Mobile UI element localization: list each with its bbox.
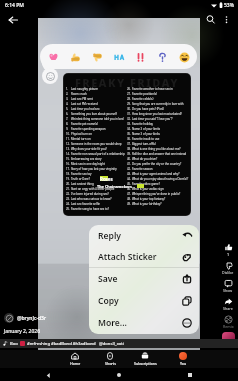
button[interactable]: thumbs down	[88, 46, 106, 68]
staticText: #refreshing #badBond #h3adbond @donc3_xo…	[27, 341, 124, 347]
staticText: 15.	[66, 157, 71, 161]
button[interactable]: Attach Sticker	[89, 246, 199, 267]
staticText: Why does your side fit you?	[71, 147, 107, 151]
staticText: 49.	[127, 202, 132, 206]
button[interactable]: Shorts	[95, 350, 125, 368]
staticText: 10.	[66, 132, 71, 136]
staticText: 9.	[66, 127, 71, 131]
staticText: Last time you said "I love you"?	[132, 117, 173, 121]
staticText: 38.	[127, 147, 132, 151]
staticText: Favorite spanking weapon	[71, 127, 106, 131]
staticText: Show	[223, 288, 233, 293]
staticText: FREAKY FRIDAY	[63, 75, 191, 90]
staticText: 24.	[66, 202, 71, 206]
staticText: You	[180, 361, 187, 366]
button[interactable]: question	[153, 46, 171, 68]
staticText: 17.	[66, 167, 71, 171]
button[interactable]: Add reaction	[42, 68, 58, 84]
staticText: Boo	[10, 341, 18, 347]
staticText: 45.	[127, 182, 132, 186]
staticText: Name 3 of your limits	[132, 127, 161, 131]
staticText: 6.	[66, 112, 71, 116]
button[interactable]: @brynJc-d3r	[4, 313, 47, 323]
staticText: 36.	[127, 137, 132, 141]
staticText: Start an orgy with 4 other people	[71, 187, 115, 191]
staticText: Truth or Dare?	[71, 177, 90, 181]
button[interactable]: Subscriptions	[130, 350, 160, 368]
button[interactable]: FREAKY FRIDAY	[63, 73, 191, 216]
staticText: 16.	[66, 162, 71, 166]
staticText: Favorite celeb(s)	[132, 97, 154, 101]
staticText: Biggest turn-off(s)	[132, 142, 156, 146]
staticText: 40.	[127, 157, 132, 161]
staticText: 34.	[127, 127, 132, 131]
staticText: Do you have pets? (Pics!)	[132, 107, 165, 111]
staticText: 25.	[66, 207, 71, 211]
staticText: Shorts	[105, 361, 116, 366]
button[interactable]: Save	[89, 268, 199, 290]
staticText: Weirdest thing someone told you in bed	[71, 117, 124, 121]
button[interactable]: More...	[89, 312, 199, 334]
staticText: The Chainsmokers	[97, 184, 132, 189]
staticText: Someone in the room you would sleep with…	[71, 142, 127, 146]
staticText: Subscriptions	[134, 361, 157, 366]
button[interactable]: More options	[218, 11, 235, 28]
button[interactable]: Sound track	[0, 339, 238, 348]
staticText: 1	[227, 252, 230, 257]
staticText: Home	[70, 361, 81, 366]
button[interactable]: Search	[202, 11, 219, 28]
button[interactable]: laughing	[175, 46, 193, 68]
button[interactable]: Recent apps	[184, 369, 196, 381]
staticText: Favorite season	[132, 167, 153, 171]
staticText: 5.	[66, 107, 71, 111]
button[interactable]: Dislike	[222, 261, 234, 275]
staticText: What do you enjoy about having a Dom(s)?	[132, 177, 189, 181]
button[interactable]: You	[168, 350, 198, 368]
button[interactable]: Back	[4, 11, 21, 28]
staticText: Favorite position(s)	[132, 92, 157, 96]
staticText: Remix	[223, 324, 234, 329]
staticText: January 2, 2026	[4, 328, 41, 335]
staticText: 14.	[66, 152, 71, 156]
staticText: Do you prefer the city or the country?	[132, 162, 182, 166]
staticText: What is your top fantasy?	[132, 197, 166, 201]
staticText: 26.	[127, 87, 132, 91]
staticText: Room crush	[71, 92, 87, 96]
staticText: What is your agent animal and why?	[132, 172, 180, 176]
button[interactable]: Like	[224, 243, 233, 257]
staticText: 18.	[66, 172, 71, 176]
staticText: 20.	[66, 182, 71, 186]
button[interactable]: Back	[42, 369, 54, 381]
staticText: 41.	[127, 162, 132, 166]
staticText: 31.	[127, 112, 132, 116]
staticText: 39.	[127, 152, 132, 156]
button[interactable]: Remix	[223, 315, 234, 329]
button[interactable]: Copy	[89, 290, 199, 312]
button[interactable]: thumbs up	[66, 46, 84, 68]
button[interactable]: Reply	[89, 225, 199, 246]
staticText: 13.	[66, 147, 71, 151]
staticText: Name 3 of your kinks	[132, 132, 160, 136]
button[interactable]: Share	[223, 297, 233, 311]
staticText: 44.	[127, 177, 132, 181]
button[interactable]: Comments	[223, 279, 233, 293]
staticText: Favorite insult to use	[132, 137, 160, 141]
staticText: 42.	[127, 167, 132, 171]
button[interactable]: Home	[113, 369, 125, 381]
staticText: Last time you had sex	[71, 107, 100, 111]
button[interactable]: Home	[60, 350, 90, 368]
staticText: Share	[223, 306, 233, 311]
staticText: 47.	[127, 192, 132, 196]
staticText: Favorite weather to have sex in	[132, 87, 173, 91]
button[interactable]: heart	[44, 46, 62, 68]
staticText: Favorite video game?	[132, 182, 160, 186]
button[interactable]: Sound	[222, 332, 235, 345]
staticText: 28.	[127, 97, 132, 101]
button[interactable]: exclamation	[131, 46, 149, 68]
staticText: 37.	[127, 142, 132, 146]
button[interactable]: haha	[110, 46, 128, 68]
staticText: 22.	[66, 192, 71, 196]
staticText: Last sex favorite selfie	[71, 202, 100, 206]
staticText: Favorite holiday	[132, 122, 153, 126]
staticText: How long since you last masturbated?	[132, 112, 182, 116]
